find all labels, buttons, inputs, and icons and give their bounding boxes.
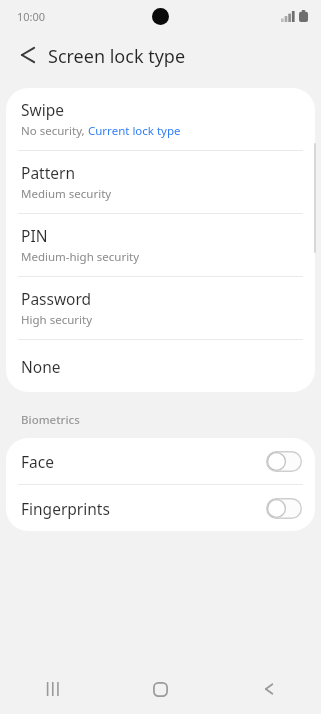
- button[interactable]: Home: [107, 664, 214, 714]
- staticText: PIN: [21, 225, 48, 246]
- button[interactable]: Swipe: [6, 88, 315, 150]
- staticText: 10:00: [17, 9, 46, 24]
- staticText: Current lock type: [88, 123, 181, 139]
- button[interactable]: Back: [214, 664, 321, 714]
- staticText: Medium-high security: [21, 249, 140, 265]
- staticText: Medium security: [21, 186, 112, 202]
- staticText: High security: [21, 312, 93, 328]
- button[interactable]: Password: [6, 277, 315, 339]
- staticText: Password: [21, 288, 92, 309]
- staticText: No security,: [21, 123, 88, 139]
- button[interactable]: Face: [6, 438, 315, 484]
- staticText: Face: [21, 451, 266, 472]
- button[interactable]: None: [6, 340, 315, 392]
- button[interactable]: PIN: [6, 214, 315, 276]
- staticText: Fingerprints: [21, 498, 266, 519]
- button[interactable]: Pattern: [6, 151, 315, 213]
- button[interactable]: Fingerprints: [6, 485, 315, 531]
- other: Toggle: [266, 451, 302, 472]
- button[interactable]: Back: [9, 37, 45, 73]
- staticText: Pattern: [21, 162, 75, 183]
- other: Toggle: [266, 498, 302, 519]
- staticText: Screen lock type: [48, 44, 186, 69]
- button[interactable]: Recents: [0, 664, 107, 714]
- staticText: Biometrics: [21, 412, 80, 428]
- staticText: Swipe: [21, 99, 64, 120]
- staticText: None: [21, 356, 61, 377]
